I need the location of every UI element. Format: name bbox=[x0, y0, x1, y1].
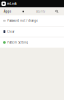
button[interactable]: Password not / change bbox=[0, 15, 64, 26]
button[interactable]: Pattern Setting bbox=[0, 37, 64, 48]
staticText: Password not / change bbox=[7, 19, 38, 22]
button[interactable]: Clear bbox=[0, 26, 64, 37]
staticText: Apps bbox=[4, 10, 11, 13]
button[interactable]: Apps bbox=[3, 9, 11, 14]
staticText: Clear bbox=[7, 30, 14, 33]
staticText: Security bbox=[36, 10, 45, 13]
button[interactable]: Security bbox=[35, 9, 45, 14]
staticText: Pattern Setting bbox=[7, 41, 28, 44]
staticText: mLock bbox=[7, 2, 17, 6]
button[interactable]: Filter bbox=[22, 10, 25, 13]
button[interactable]: Search bbox=[56, 10, 58, 13]
